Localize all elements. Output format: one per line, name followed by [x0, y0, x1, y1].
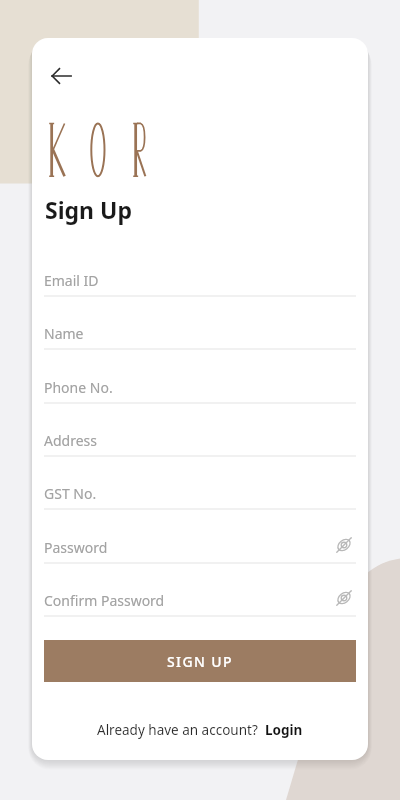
staticText: Login: [265, 721, 303, 739]
button[interactable]: Toggle password visibility: [332, 533, 356, 557]
staticText: Phone No.: [44, 378, 113, 397]
staticText: Already have an account?: [97, 721, 265, 739]
button[interactable]: Password: [44, 529, 356, 579]
staticText: SIGN UP: [167, 652, 234, 671]
button[interactable]: SIGN UP: [44, 640, 356, 682]
staticText: Password: [44, 538, 108, 557]
button[interactable]: Name: [44, 315, 356, 365]
button[interactable]: Address: [44, 422, 356, 472]
staticText: Email ID: [44, 271, 99, 290]
button[interactable]: Toggle password visibility: [332, 586, 356, 610]
button[interactable]: Login: [265, 721, 303, 739]
staticText: GST No.: [44, 484, 97, 503]
staticText: Sign Up: [45, 194, 132, 225]
button[interactable]: Confirm Password: [44, 582, 356, 632]
staticText: Name: [44, 324, 84, 343]
staticText: Address: [44, 431, 97, 450]
button[interactable]: Phone No.: [44, 369, 356, 419]
button[interactable]: Back: [40, 55, 82, 97]
button[interactable]: Email ID: [44, 262, 356, 312]
button[interactable]: GST No.: [44, 475, 356, 525]
staticText: Confirm Password: [44, 591, 165, 610]
